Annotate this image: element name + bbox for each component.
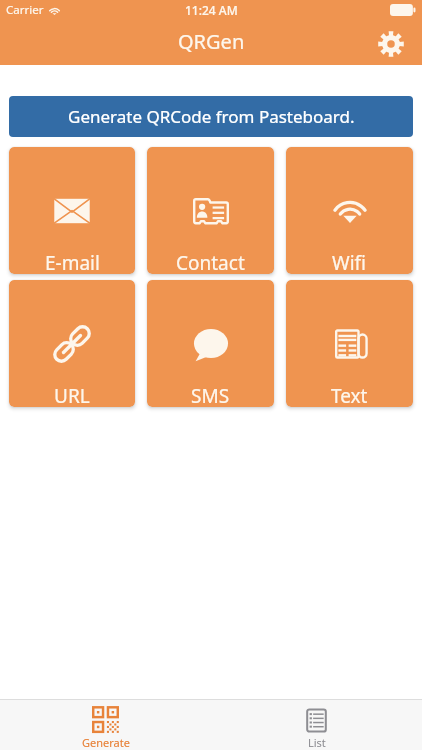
button[interactable]: List	[211, 700, 422, 750]
staticText: Carrier	[6, 2, 44, 18]
button[interactable]: Wifi	[286, 147, 413, 274]
staticText: URL	[54, 383, 90, 407]
staticText: List	[308, 735, 326, 750]
button[interactable]: Settings	[374, 27, 408, 61]
staticText: E-mail	[45, 250, 100, 274]
staticText: 11:24 AM	[185, 2, 238, 18]
staticText: Text	[331, 383, 368, 407]
staticText: Generate	[82, 735, 130, 750]
button[interactable]: URL	[9, 280, 135, 407]
staticText: QRGen	[178, 28, 245, 55]
staticText: Contact	[176, 250, 245, 274]
button[interactable]: Generate QRCode from Pasteboard.	[9, 96, 413, 137]
staticText: SMS	[191, 383, 230, 407]
button[interactable]: E-mail	[9, 147, 135, 274]
staticText: Generate QRCode from Pasteboard.	[68, 105, 355, 128]
button[interactable]: Text	[286, 280, 413, 407]
staticText: Wifi	[332, 250, 367, 274]
button[interactable]: Contact	[147, 147, 274, 274]
button[interactable]: SMS	[147, 280, 274, 407]
button[interactable]: Generate	[0, 700, 211, 750]
